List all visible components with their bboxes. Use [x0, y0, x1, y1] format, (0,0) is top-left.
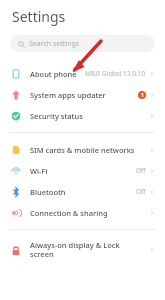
button[interactable]: System apps updater — [0, 84, 165, 105]
staticText: Off — [136, 166, 146, 175]
button[interactable]: Always-on display & Lock screen — [0, 236, 165, 264]
button[interactable]: Search settings — [10, 35, 155, 52]
button[interactable]: Security status — [0, 105, 165, 126]
staticText: Security status — [30, 111, 149, 121]
staticText: System apps updater — [30, 90, 138, 100]
staticText: 1 — [141, 92, 144, 99]
staticText: SIM cards & mobile networks — [30, 145, 149, 155]
button[interactable]: Bluetooth — [0, 181, 165, 202]
staticText: Connection & sharing — [30, 208, 149, 218]
button[interactable]: Wi-Fi — [0, 160, 165, 181]
staticText: MIUI Global 13.0.10 — [85, 69, 146, 78]
staticText: Wi-Fi — [30, 166, 136, 176]
staticText: Off — [136, 187, 146, 196]
staticText: Always-on display & Lock screen — [30, 240, 149, 260]
staticText: Search settings — [29, 39, 80, 49]
staticText: Settings — [12, 7, 66, 26]
button[interactable]: Connection & sharing — [0, 202, 165, 223]
button[interactable]: About phone — [0, 63, 165, 84]
staticText: About phone — [30, 69, 85, 79]
staticText: Bluetooth — [30, 187, 136, 197]
button[interactable]: SIM cards & mobile networks — [0, 139, 165, 160]
